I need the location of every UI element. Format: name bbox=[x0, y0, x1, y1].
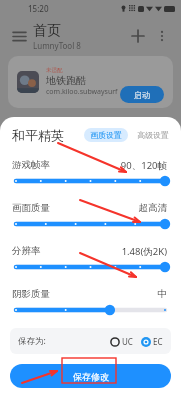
button[interactable]: More options bbox=[151, 25, 173, 47]
button[interactable]: 未适配 bbox=[8, 56, 173, 108]
staticText: 1.48(伪2K) bbox=[121, 245, 167, 258]
staticText: 启动 bbox=[134, 90, 150, 100]
staticText: 分辨率 bbox=[12, 245, 41, 257]
staticText: com.kiloo.subwaysurf bbox=[46, 87, 118, 97]
button[interactable] bbox=[12, 259, 169, 275]
staticText: 画质设置 bbox=[90, 130, 122, 140]
staticText: 游戏帧率 bbox=[12, 159, 50, 171]
staticText: EC bbox=[153, 336, 163, 347]
staticText: 高级设置 bbox=[137, 130, 169, 140]
button[interactable] bbox=[12, 216, 169, 232]
button[interactable]: 画质设置 bbox=[84, 128, 128, 142]
button[interactable]: 高级设置 bbox=[135, 128, 171, 142]
button[interactable]: Menu bbox=[8, 25, 30, 47]
staticText: 未适配 bbox=[46, 67, 63, 74]
staticText: 中 bbox=[157, 288, 167, 300]
button[interactable]: 保存修改 bbox=[10, 364, 171, 388]
button[interactable]: EC bbox=[141, 336, 163, 347]
staticText: 15:20 bbox=[28, 3, 49, 14]
staticText: 地铁跑酷 bbox=[46, 74, 86, 87]
button[interactable]: 启动 bbox=[120, 86, 164, 103]
staticText: 超高清 bbox=[138, 202, 167, 214]
button[interactable]: UC bbox=[110, 336, 133, 347]
staticText: LumnyTool 8 bbox=[33, 40, 81, 51]
button[interactable] bbox=[12, 302, 169, 318]
staticText: 和平精英 bbox=[12, 127, 64, 143]
staticText: UC bbox=[122, 336, 133, 347]
staticText: 画面质量 bbox=[12, 202, 50, 214]
button[interactable]: Add bbox=[127, 25, 149, 47]
staticText: 90、120帧 bbox=[120, 159, 167, 172]
button[interactable] bbox=[12, 173, 169, 189]
staticText: 保存修改 bbox=[73, 371, 109, 382]
staticText: 阴影质量 bbox=[12, 288, 50, 300]
staticText: 保存为: bbox=[18, 335, 46, 347]
staticText: 首页 bbox=[33, 22, 61, 40]
